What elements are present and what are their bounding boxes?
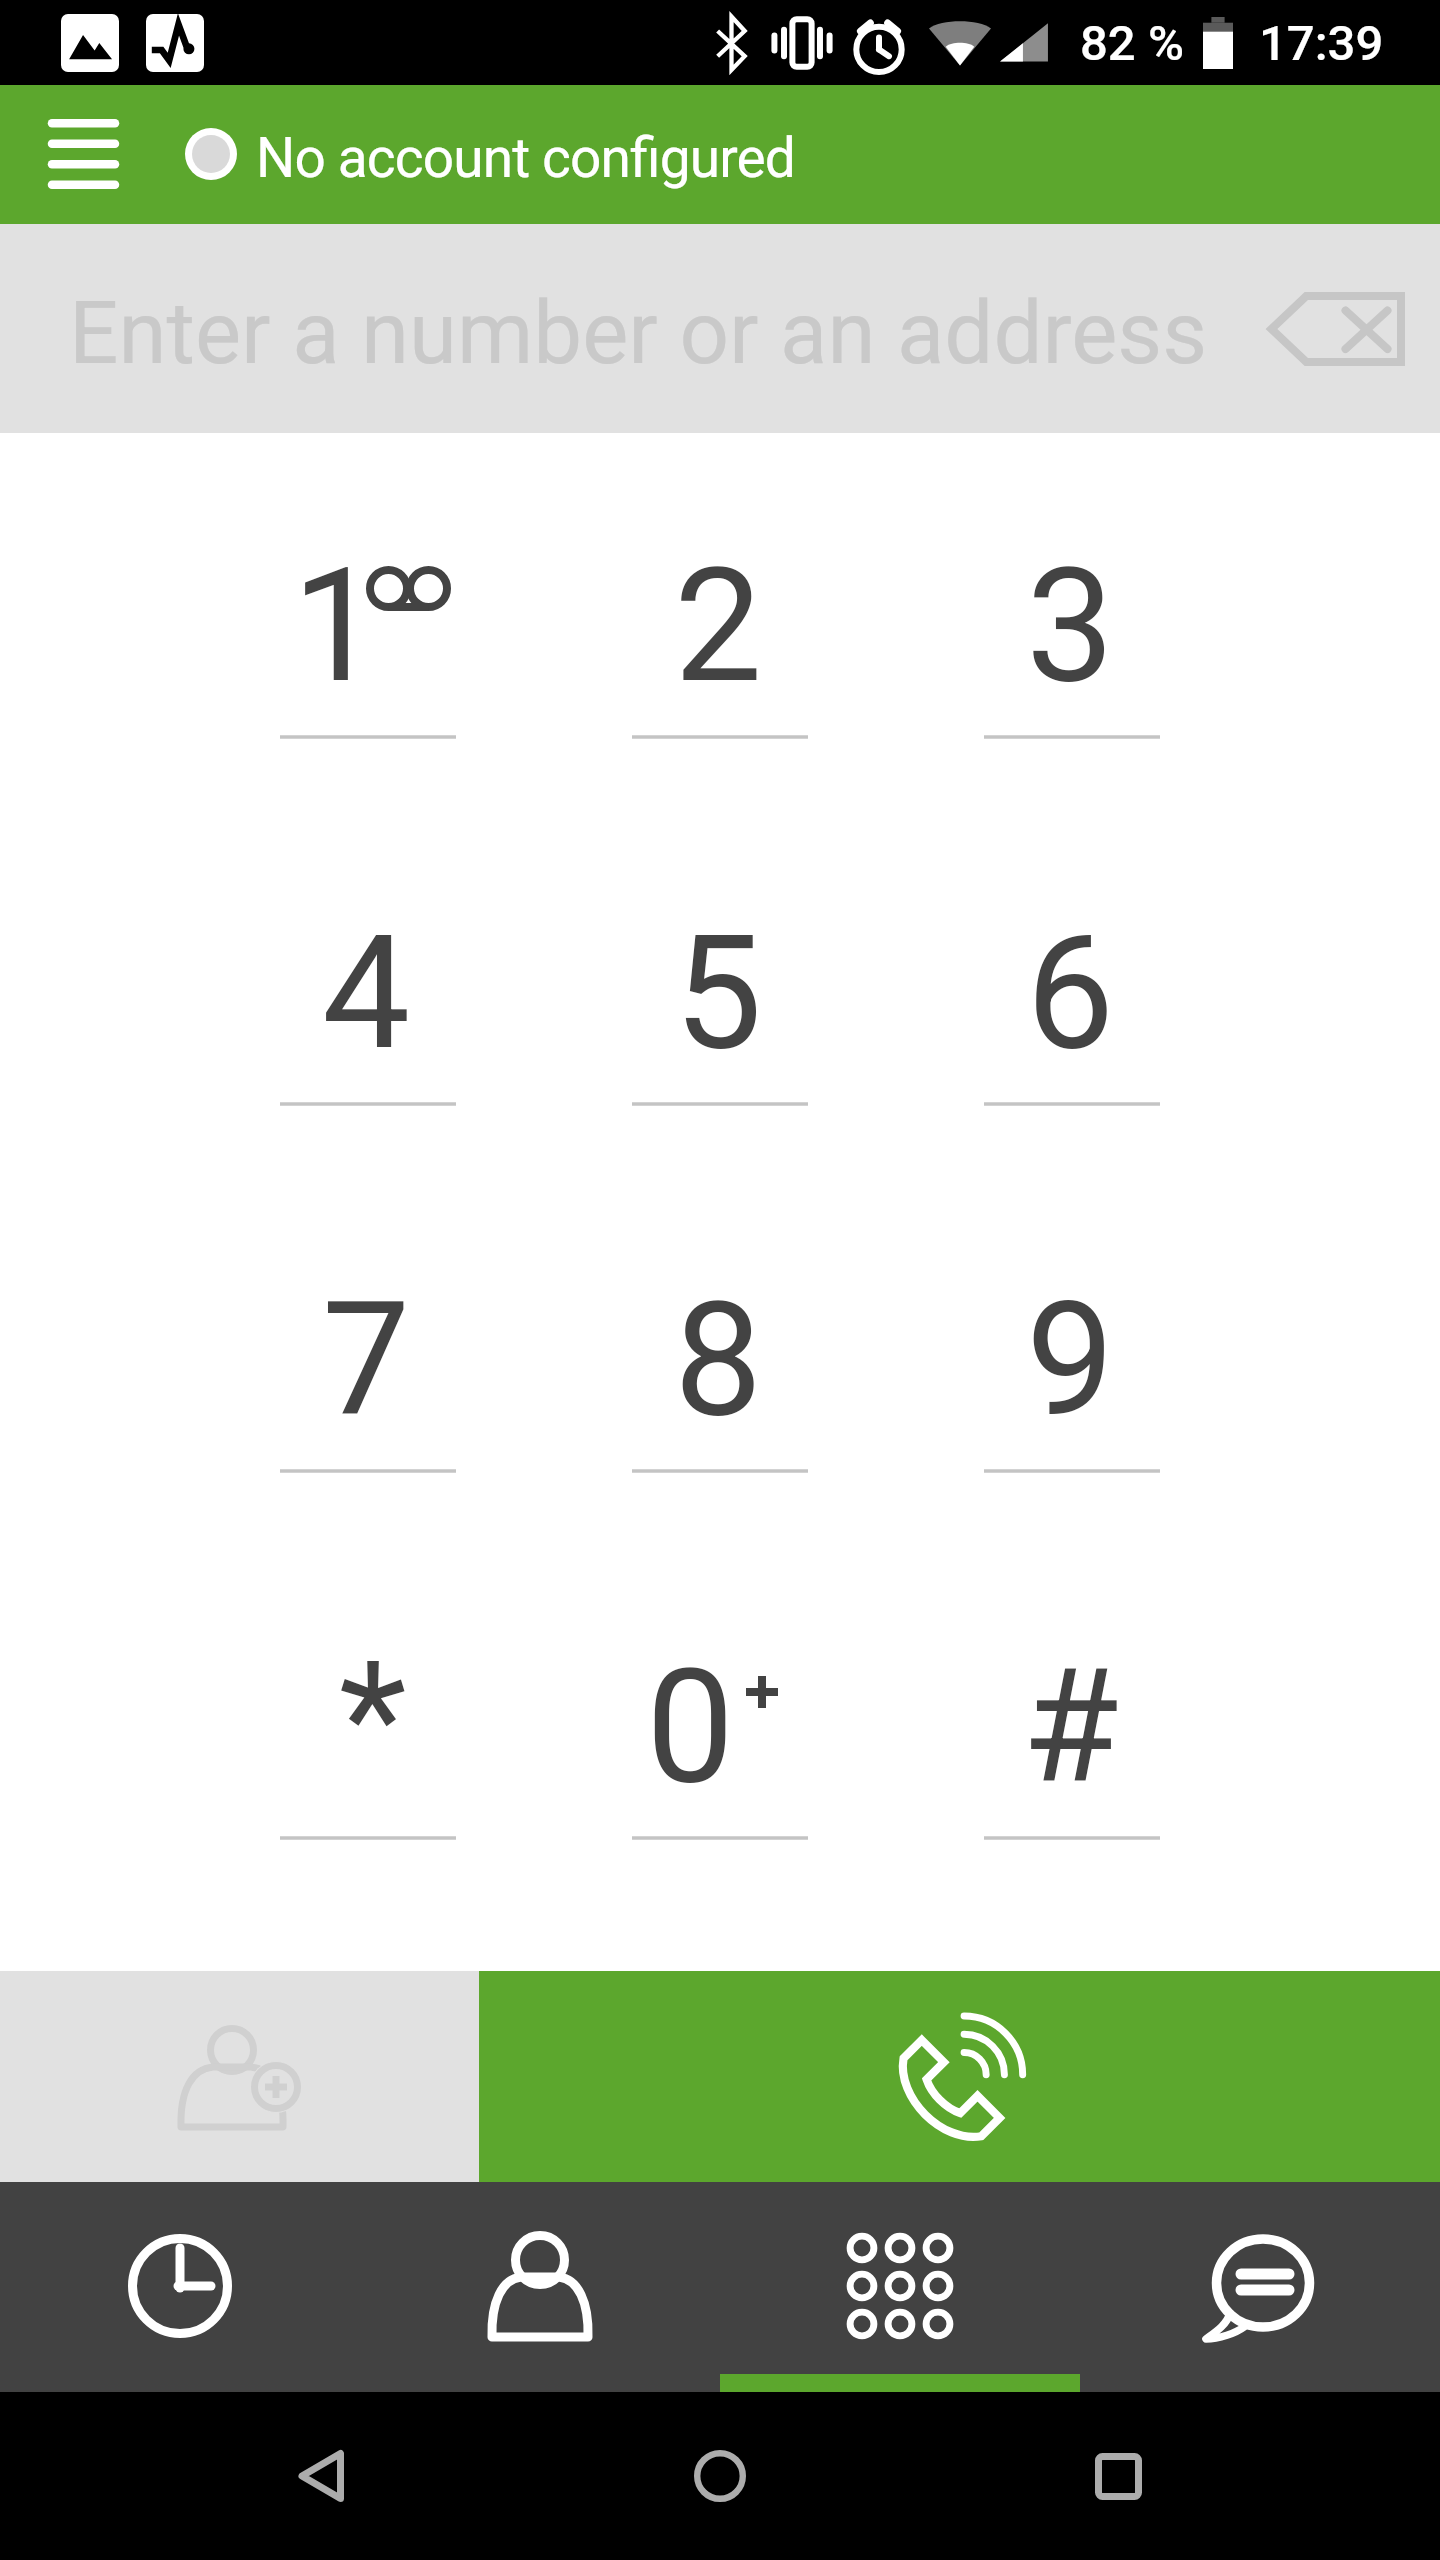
button[interactable]: Recents bbox=[1043, 2401, 1193, 2551]
button[interactable]: 5 bbox=[544, 801, 896, 1168]
button[interactable]: Chat bbox=[1080, 2182, 1440, 2392]
staticText: 17:39 bbox=[1259, 15, 1384, 72]
button[interactable]: 7 bbox=[192, 1168, 544, 1535]
staticText: 3 bbox=[1026, 534, 1115, 718]
staticText: 1 bbox=[292, 534, 381, 718]
button[interactable]: Call history bbox=[0, 2182, 360, 2392]
button[interactable]: 0 bbox=[544, 1535, 896, 1902]
staticText: 9 bbox=[1026, 1268, 1115, 1452]
button[interactable]: Open navigation menu bbox=[0, 85, 167, 224]
staticText: 82 % bbox=[1080, 15, 1184, 72]
button[interactable]: Add contact bbox=[0, 1971, 479, 2182]
button[interactable]: Back bbox=[246, 2401, 396, 2551]
button[interactable]: * bbox=[192, 1535, 544, 1902]
staticText: 2 bbox=[674, 534, 763, 718]
staticText: # bbox=[1022, 1635, 1119, 1819]
staticText: 0 bbox=[646, 1635, 735, 1819]
button[interactable]: # bbox=[896, 1535, 1248, 1902]
button[interactable]: 2 bbox=[544, 434, 896, 801]
staticText: * bbox=[339, 1627, 407, 1811]
staticText: 8 bbox=[674, 1268, 763, 1452]
button[interactable]: Start call bbox=[479, 1971, 1440, 2182]
staticText: 7 bbox=[322, 1268, 411, 1452]
button[interactable]: 6 bbox=[896, 801, 1248, 1168]
button[interactable]: 3 bbox=[896, 434, 1248, 801]
staticText: No account configured bbox=[256, 126, 795, 190]
button[interactable]: 9 bbox=[896, 1168, 1248, 1535]
staticText: 4 bbox=[322, 901, 411, 1085]
button[interactable]: Backspace bbox=[1240, 224, 1440, 433]
button[interactable]: 4 bbox=[192, 801, 544, 1168]
staticText: 6 bbox=[1026, 901, 1115, 1085]
button[interactable]: 1 bbox=[192, 434, 544, 801]
button[interactable]: Dialer bbox=[720, 2182, 1080, 2392]
staticText: Enter a number or an address bbox=[69, 282, 1208, 384]
staticText: 5 bbox=[674, 901, 763, 1085]
button[interactable]: Home bbox=[645, 2401, 795, 2551]
button[interactable]: Contacts bbox=[360, 2182, 720, 2392]
button[interactable]: 8 bbox=[544, 1168, 896, 1535]
